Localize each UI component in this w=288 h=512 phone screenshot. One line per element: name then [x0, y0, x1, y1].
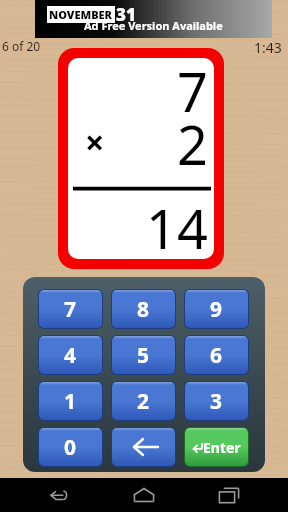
staticText: 4	[64, 341, 77, 370]
staticText: 2	[177, 107, 208, 181]
staticText: Enter	[203, 438, 241, 457]
button[interactable]: 3	[184, 381, 249, 421]
button[interactable]: Back	[38, 478, 80, 512]
button[interactable]: 1	[38, 381, 103, 421]
button[interactable]: Backspace	[111, 427, 176, 467]
button[interactable]: Recent apps	[208, 478, 250, 512]
staticText: 6	[210, 341, 223, 370]
staticText: 7	[177, 58, 208, 128]
button[interactable]: 0	[38, 427, 103, 467]
button[interactable]: 4	[38, 335, 103, 375]
staticText: 7	[64, 295, 77, 324]
button[interactable]: Home	[123, 478, 165, 512]
staticText: 6 of 20	[2, 38, 41, 54]
staticText: ×	[85, 119, 105, 165]
staticText: 3	[210, 387, 223, 416]
staticText: 0	[64, 433, 77, 462]
button[interactable]: 7	[38, 289, 103, 329]
staticText: NOVEMBER	[49, 7, 113, 22]
staticText: 31	[116, 3, 136, 26]
staticText: 14	[146, 191, 208, 259]
button[interactable]: 2	[111, 381, 176, 421]
button[interactable]: 9	[184, 289, 249, 329]
staticText: Ad Free Version Available	[84, 18, 223, 33]
staticText: 5	[137, 341, 150, 370]
button[interactable]: Enter	[184, 427, 249, 467]
staticText: 9	[210, 295, 223, 324]
staticText: 8	[137, 295, 150, 324]
staticText: 1	[64, 387, 77, 416]
button[interactable]: 7	[58, 48, 224, 269]
button[interactable]: 8	[111, 289, 176, 329]
button[interactable]: 6	[184, 335, 249, 375]
staticText: 2	[137, 387, 150, 416]
staticText: 1:43	[254, 38, 282, 57]
button[interactable]: 5	[111, 335, 176, 375]
button[interactable]: Advertisement banner	[35, 0, 272, 38]
